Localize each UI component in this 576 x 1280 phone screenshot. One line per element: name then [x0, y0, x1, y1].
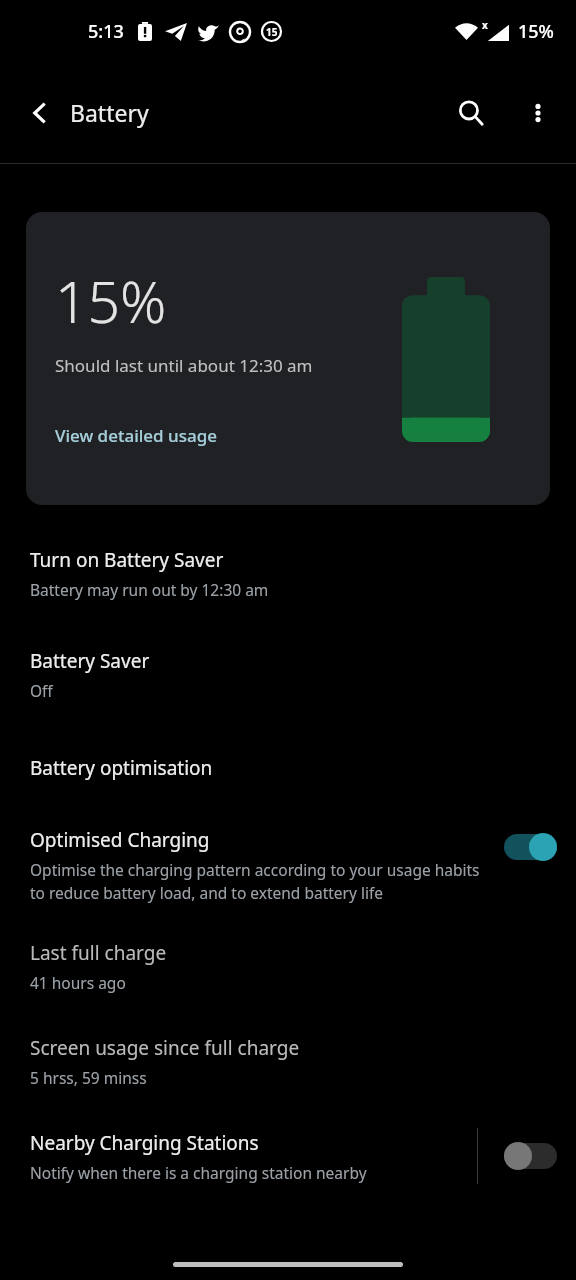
button[interactable]: Battery Saver [0, 648, 576, 701]
staticText: Should last until about 12:30 am [55, 354, 313, 377]
staticText: 15% [518, 19, 554, 44]
staticText: 41 hours ago [30, 972, 126, 993]
staticText: Last full charge [30, 940, 167, 966]
button[interactable]: Optimised Charging [0, 827, 576, 904]
button[interactable]: Last full charge [0, 940, 576, 993]
staticText: 15 [266, 25, 278, 39]
staticText: Off [30, 680, 53, 701]
button[interactable]: Battery optimisation [0, 755, 576, 781]
staticText: 5 hrss, 59 minss [30, 1067, 147, 1088]
button[interactable]: Search [444, 86, 498, 140]
staticText: Turn on Battery Saver [30, 547, 224, 573]
staticText: Optimise the charging pattern according … [30, 859, 486, 904]
button[interactable]: Screen usage since full charge [0, 1035, 576, 1088]
staticText: x [482, 18, 488, 32]
button[interactable]: Back [16, 89, 64, 137]
button[interactable]: View detailed usage [55, 424, 217, 447]
button[interactable]: Turn on Battery Saver [0, 547, 576, 600]
staticText: 15% [55, 262, 167, 340]
staticText: Nearby Charging Stations [30, 1130, 259, 1156]
staticText: Battery may run out by 12:30 am [30, 579, 269, 600]
button[interactable]: Toggle on [504, 833, 557, 861]
button[interactable]: 15% [26, 212, 550, 505]
staticText: Notify when there is a charging station … [30, 1162, 367, 1183]
button[interactable]: More options [514, 89, 562, 137]
staticText: Battery Saver [30, 648, 150, 674]
button[interactable]: Toggle off [504, 1142, 557, 1170]
button[interactable]: Nearby Charging Stations [0, 1128, 576, 1184]
staticText: 5:13 [88, 19, 124, 44]
staticText: Optimised Charging [30, 827, 210, 853]
staticText: Screen usage since full charge [30, 1035, 300, 1061]
staticText: Battery optimisation [30, 755, 213, 781]
staticText: Battery [70, 97, 149, 128]
